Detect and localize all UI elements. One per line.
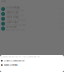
staticText: Let's catch up soon (6, 24, 25, 27)
staticText: 9:41 (2, 0, 6, 3)
staticText: Jamie Chen (6, 11, 18, 14)
button[interactable]: Sam Patel (0, 21, 64, 26)
button[interactable]: Riley Fox (0, 26, 64, 31)
staticText: Riley Fox (6, 26, 16, 29)
staticText: Share Conversation (4, 59, 24, 62)
staticText: See you tomorrow (6, 9, 24, 12)
staticText: Alex Morgan (6, 6, 19, 9)
staticText: Sounds good to me (6, 14, 24, 17)
staticText: Taylor Reed (6, 16, 18, 19)
staticText: Sam Patel (6, 21, 18, 24)
button[interactable]: Taylor Reed (0, 16, 64, 21)
button[interactable]: Alex Morgan (0, 7, 64, 11)
staticText: Choose an action for this conversation (1, 55, 40, 58)
staticText: Thanks for the help (6, 19, 25, 22)
button[interactable]: Mark Unread (0, 63, 64, 67)
button[interactable]: Jamie Chen (0, 11, 64, 16)
staticText: Mark Unread (4, 64, 17, 66)
button[interactable]: Share Conversation (0, 59, 64, 63)
